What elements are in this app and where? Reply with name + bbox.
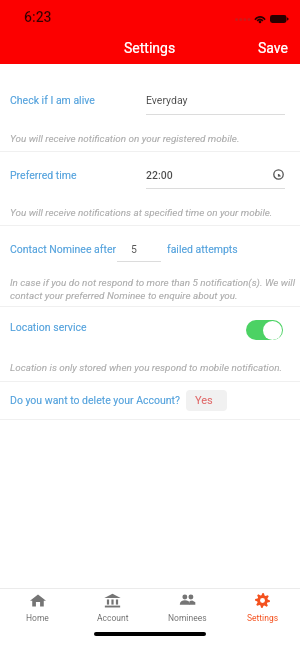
button[interactable]: Home	[0, 591, 75, 628]
staticText: Preferred time	[10, 169, 77, 181]
staticText: Check if I am alive	[10, 94, 95, 106]
button[interactable]: Yes	[186, 390, 227, 411]
button[interactable]: Location service	[0, 320, 300, 340]
button[interactable]: Contact Nominee after	[0, 242, 300, 258]
button[interactable]: Check if I am alive	[0, 93, 300, 109]
staticText: Do you want to delete your Account?	[10, 394, 180, 406]
staticText: Save	[258, 40, 288, 56]
button[interactable]: Save	[246, 34, 300, 62]
staticText: Account	[97, 613, 129, 623]
staticText: Nominees	[168, 613, 207, 623]
other: Pick time	[273, 169, 284, 180]
staticText: Yes	[195, 394, 213, 407]
button[interactable]: Account	[75, 591, 150, 628]
staticText: Location service	[10, 321, 87, 333]
staticText: 5	[117, 243, 151, 255]
staticText: You will receive notification on your re…	[10, 133, 240, 145]
button[interactable]: Settings	[225, 591, 300, 628]
button[interactable]: Preferred time	[0, 168, 300, 184]
staticText: Settings	[247, 613, 279, 623]
staticText: Contact Nominee after	[10, 243, 117, 255]
staticText: failed attempts	[167, 243, 238, 255]
staticText: You will receive notifications at specif…	[10, 207, 273, 219]
staticText: Home	[26, 613, 49, 623]
staticText: Everyday	[146, 94, 188, 106]
staticText: 22:00	[146, 169, 173, 181]
staticText: Location is only stored when you respond…	[10, 362, 283, 374]
staticText: 6:23	[24, 9, 52, 25]
staticText: In case if you do not respond to more th…	[10, 277, 300, 302]
staticText: Settings	[124, 40, 176, 56]
button[interactable]: Nominees	[150, 591, 225, 628]
